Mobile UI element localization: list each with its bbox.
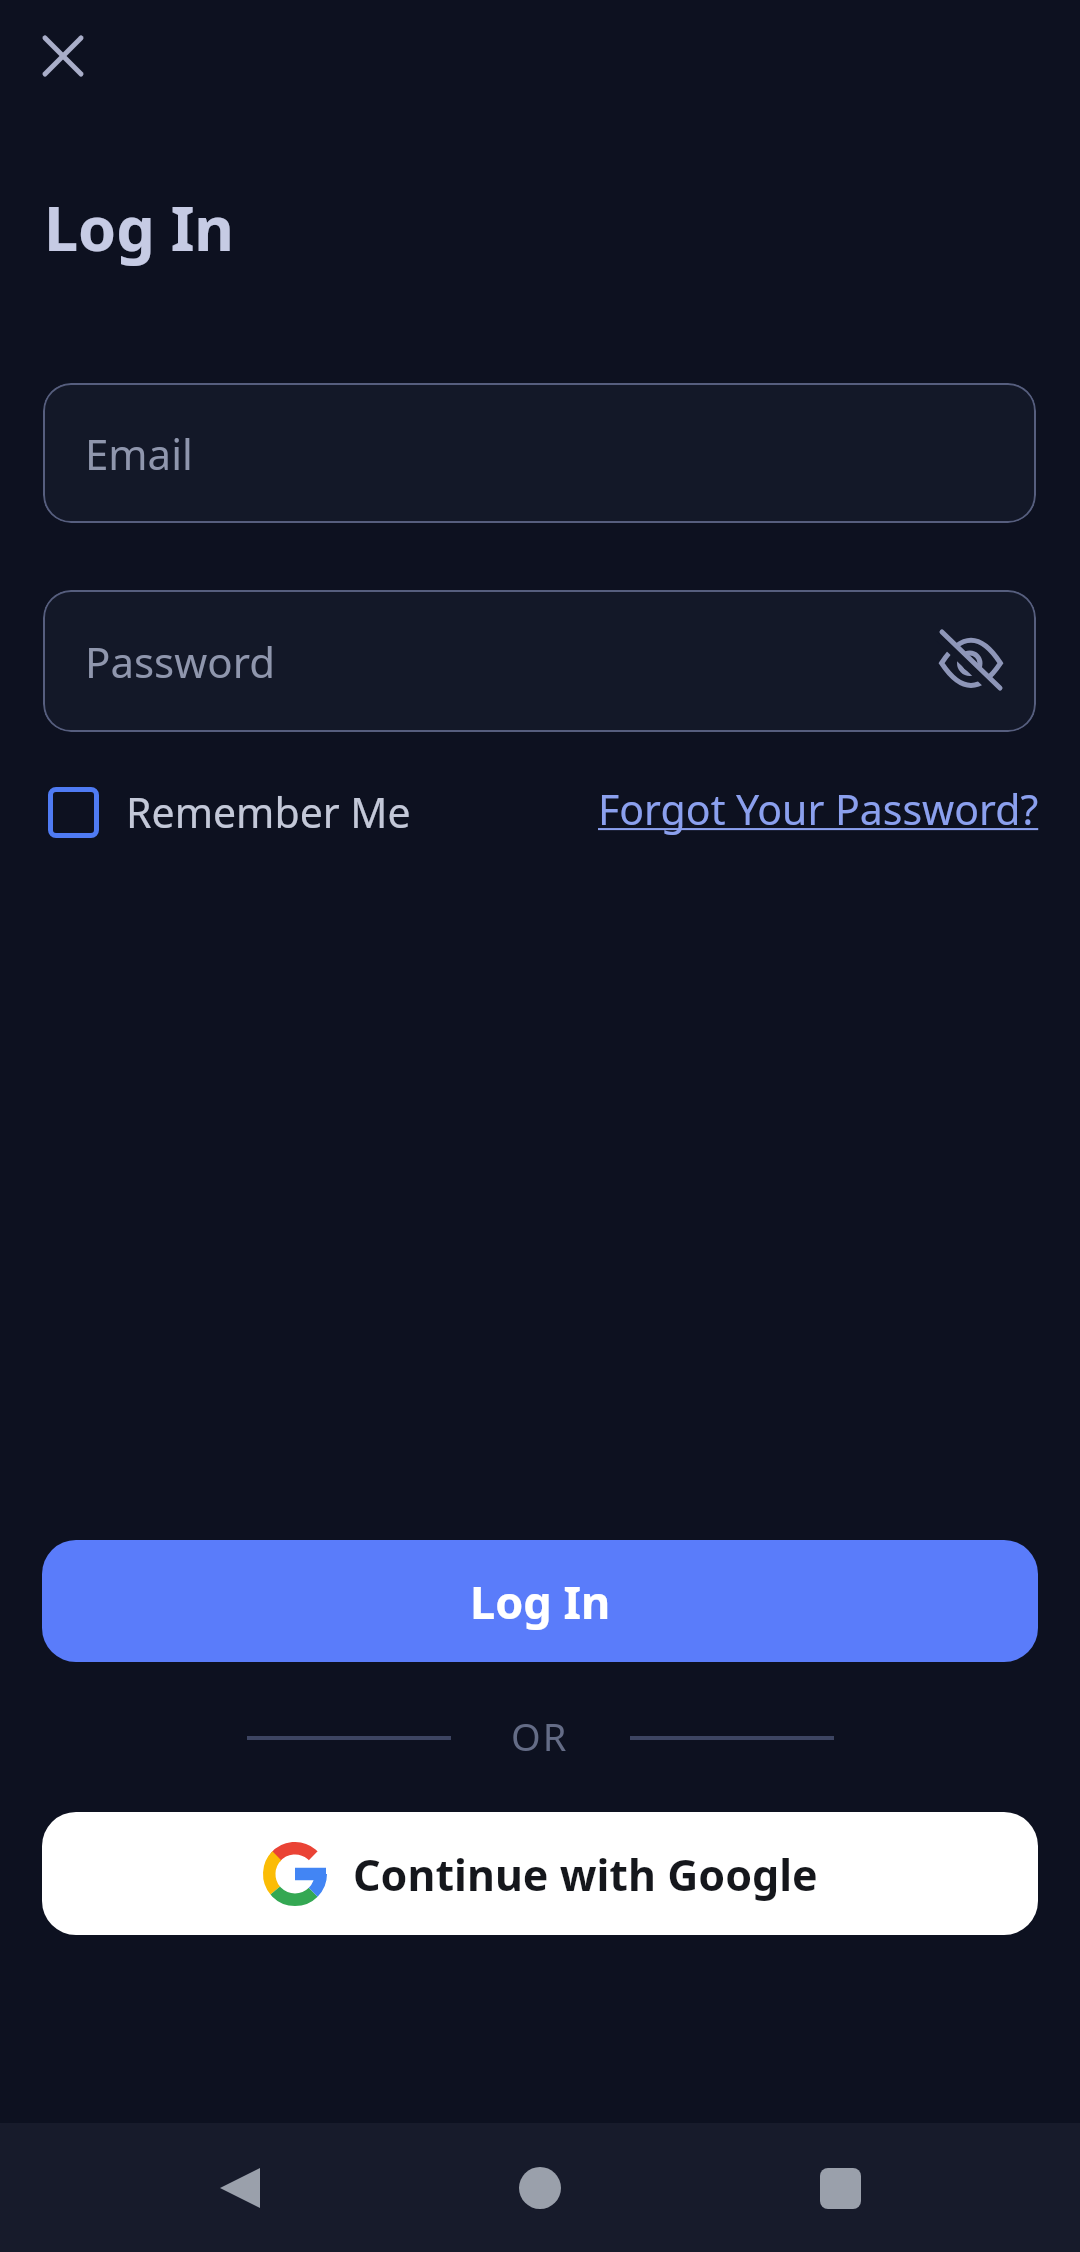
staticText: Remember Me	[126, 784, 411, 840]
button[interactable]: Forgot Your Password?	[598, 780, 1039, 837]
staticText: Email	[85, 425, 193, 482]
button[interactable]: Password	[43, 590, 1036, 732]
staticText: Log In	[44, 186, 235, 269]
button[interactable]: Continue with Google	[42, 1812, 1038, 1935]
button[interactable]: Remember Me	[48, 784, 411, 840]
staticText: Log In	[470, 1571, 611, 1632]
staticText: Password	[85, 633, 275, 690]
button[interactable]: Email	[43, 383, 1036, 523]
staticText: Forgot Your Password?	[598, 781, 1039, 837]
staticText: Continue with Google	[353, 1845, 818, 1904]
button[interactable]	[30, 23, 96, 89]
staticText: OR	[511, 1710, 569, 1762]
button[interactable]	[938, 628, 1004, 694]
button[interactable]	[507, 2155, 573, 2221]
button[interactable]	[807, 2155, 873, 2221]
button[interactable]	[207, 2155, 273, 2221]
button[interactable]: Log In	[42, 1540, 1038, 1662]
